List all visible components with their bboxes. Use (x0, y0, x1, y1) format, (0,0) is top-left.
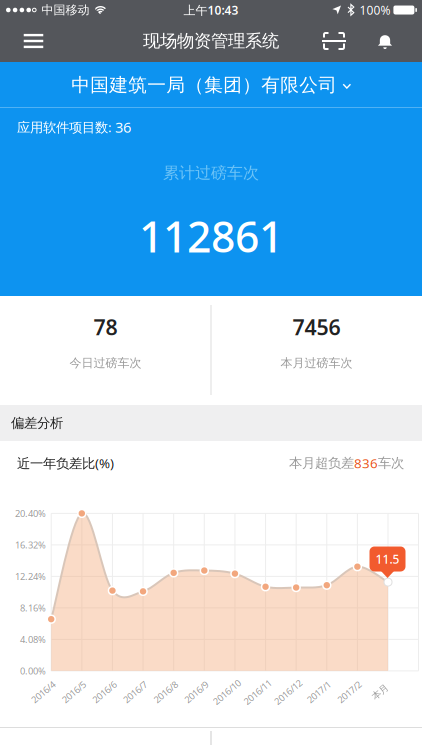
staticText: 中国建筑一局（集团）有限公司 (71, 73, 337, 96)
staticText: 100% (359, 2, 390, 18)
staticText: 2016/10 (210, 686, 243, 698)
staticText: 2016/12 (272, 686, 305, 698)
staticText: 本月过磅车次 (280, 356, 352, 370)
staticText: 2016/7 (121, 686, 149, 698)
staticText: 2016/4 (29, 686, 57, 698)
staticText: 11.5 (375, 551, 399, 567)
staticText: 应用软件项目数: (17, 118, 112, 136)
staticText: 112861 (139, 208, 283, 264)
staticText: 8.16% (20, 602, 46, 614)
staticText: 本月 (371, 686, 389, 698)
staticText: 2016/9 (182, 686, 210, 698)
staticText: 2016/6 (90, 686, 118, 698)
staticText: 2017/2 (335, 686, 363, 698)
staticText: 2016/5 (60, 686, 88, 698)
staticText: 偏差分析 (11, 415, 63, 431)
staticText: 现场物资管理系统 (143, 30, 279, 52)
staticText: 7456 (292, 313, 340, 341)
button[interactable]: 菜单 (12, 20, 55, 62)
staticText: 今日过磅车次 (69, 356, 141, 370)
staticText: 0.00% (20, 665, 46, 677)
staticText: 2017/1 (305, 686, 333, 698)
staticText: 16.32% (15, 539, 46, 551)
staticText: 中国移动 (41, 3, 89, 17)
staticText: 78 (93, 313, 117, 341)
staticText: 本月超负差 (289, 455, 354, 471)
staticText: 近一年负差比(%) (17, 454, 114, 472)
staticText: 12.24% (15, 570, 46, 583)
staticText: 2016/8 (152, 686, 180, 698)
staticText: 20.40% (15, 507, 46, 520)
staticText: 36 (115, 117, 131, 137)
staticText: 累计过磅车次 (163, 163, 259, 183)
staticText: 车次 (378, 455, 404, 471)
button[interactable]: 通知 (365, 20, 405, 62)
staticText: 4.08% (20, 633, 46, 646)
button[interactable]: 切换公司 (0, 63, 422, 107)
staticText: 836 (354, 454, 378, 472)
button[interactable]: 扫一扫 (311, 20, 357, 62)
staticText: 上午10:43 (183, 2, 238, 18)
staticText: 2016/11 (241, 686, 274, 698)
